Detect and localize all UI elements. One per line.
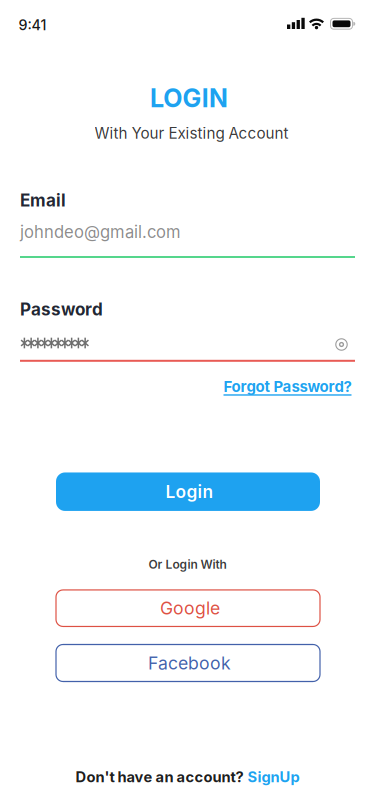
staticText: Don't have an account? [75, 768, 243, 786]
button[interactable]: Show password [334, 337, 348, 351]
staticText: Password [20, 299, 103, 320]
staticText: Email [20, 190, 66, 211]
button[interactable]: Forgot Password? [223, 377, 351, 396]
staticText: johndeo@gmail.com [20, 222, 181, 242]
staticText: Google [160, 598, 220, 619]
button[interactable]: SignUp [247, 768, 299, 786]
staticText: With Your Existing Account [94, 124, 288, 142]
button[interactable]: Login [56, 472, 320, 511]
staticText: Forgot Password? [223, 377, 351, 396]
button[interactable]: Facebook [56, 644, 320, 681]
staticText: Facebook [148, 652, 231, 674]
staticText: LOGIN [150, 83, 228, 113]
button[interactable]: Google [56, 590, 320, 626]
staticText: SignUp [247, 768, 299, 786]
staticText: Login [165, 481, 213, 502]
staticText: Or Login With [148, 557, 226, 571]
staticText: 9:41 [18, 16, 46, 34]
